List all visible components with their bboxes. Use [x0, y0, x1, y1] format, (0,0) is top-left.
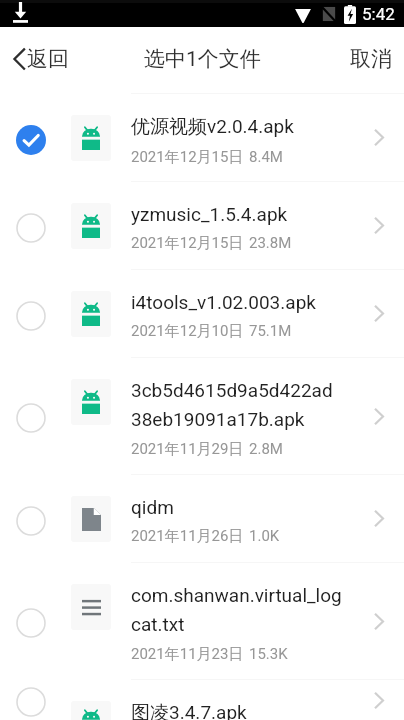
staticText: 23.8M: [249, 234, 292, 252]
button[interactable]: Select: [0, 563, 404, 680]
staticText: com.shanwan.virtual_logcat.txt: [131, 584, 343, 636]
staticText: qidm: [131, 496, 174, 518]
staticText: yzmusic_1.5.4.apk: [131, 203, 288, 225]
button[interactable]: Select: [0, 182, 404, 270]
staticText: 3cb5d4615d9a5d422ad38eb19091a17b.apk: [131, 379, 343, 431]
other: Select: [16, 301, 46, 331]
staticText: 1.0K: [249, 527, 280, 545]
staticText: 2021年11月26日: [131, 527, 244, 546]
button[interactable]: Select: [0, 358, 404, 475]
staticText: 2021年11月29日: [131, 440, 244, 459]
staticText: 8.4M: [249, 148, 283, 166]
staticText: 2.8M: [249, 440, 283, 458]
staticText: 图凌3.4.7.apk: [131, 701, 247, 720]
staticText: 2021年11月23日: [131, 645, 244, 664]
other: Select: [16, 608, 46, 638]
button[interactable]: 取消: [332, 34, 404, 86]
other: Select: [16, 506, 46, 536]
staticText: i4tools_v1.02.003.apk: [131, 291, 316, 313]
staticText: 2021年12月10日: [131, 322, 244, 341]
staticText: 选中1个文件: [144, 46, 261, 72]
staticText: 75.1M: [249, 322, 292, 340]
other: Select: [16, 213, 46, 243]
staticText: 2021年12月15日: [131, 148, 244, 167]
other: Downloading: [13, 2, 28, 23]
button[interactable]: Select: [0, 270, 404, 358]
button[interactable]: 返回: [0, 47, 81, 73]
staticText: 5:42: [362, 4, 395, 24]
staticText: 优源视频v2.0.4.apk: [131, 115, 294, 139]
staticText: 取消: [350, 46, 392, 72]
staticText: 返回: [27, 46, 69, 72]
other: Select: [16, 687, 46, 717]
other: Select: [16, 403, 46, 433]
other: Selected: [16, 125, 46, 155]
staticText: 2021年12月15日: [131, 234, 244, 253]
button[interactable]: Select: [0, 475, 404, 563]
button[interactable]: Selected: [0, 94, 404, 182]
button[interactable]: Select: [0, 680, 404, 720]
staticText: 15.3K: [249, 645, 288, 663]
